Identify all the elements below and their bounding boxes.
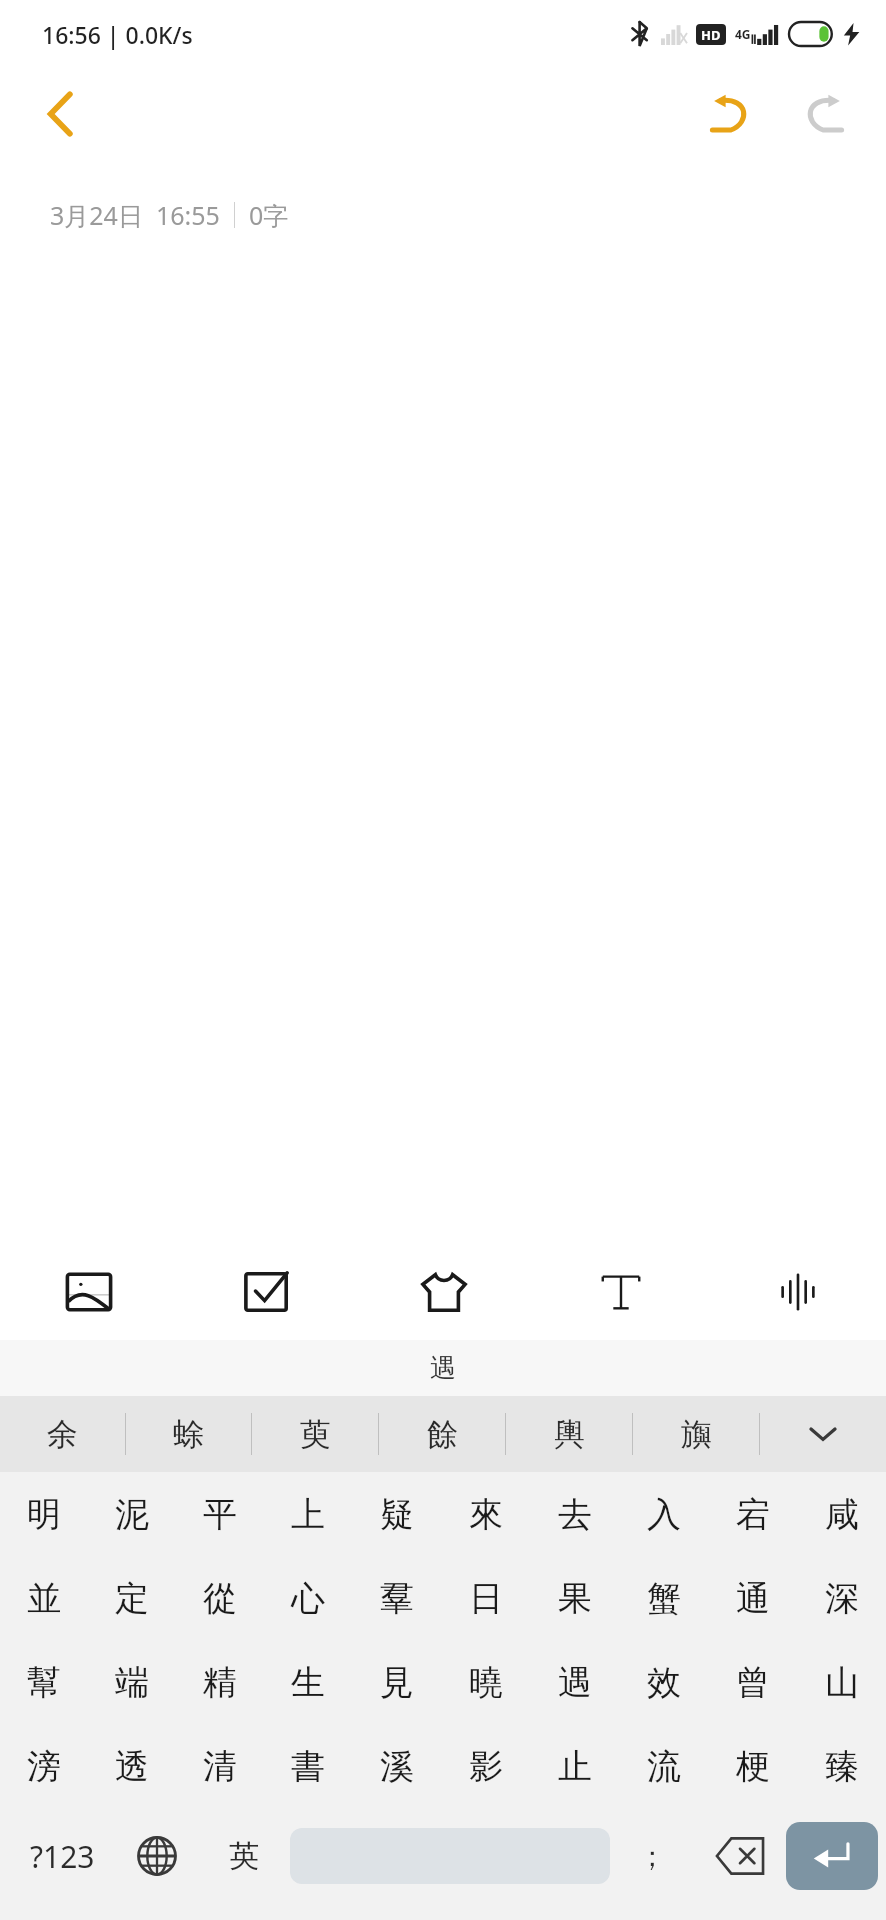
button[interactable]: 通 <box>708 1556 797 1640</box>
button[interactable]: 從 <box>176 1556 264 1640</box>
button[interactable]: 生 <box>264 1640 352 1724</box>
button[interactable]: 英 <box>198 1808 290 1904</box>
button[interactable]: 來 <box>441 1472 530 1556</box>
button[interactable]: 幫 <box>0 1640 88 1724</box>
button[interactable]: Insert image <box>0 1244 178 1340</box>
button[interactable]: 宕 <box>708 1472 797 1556</box>
staticText: 羣 <box>380 1577 414 1620</box>
button[interactable]: 曾 <box>708 1640 797 1724</box>
staticText: 余 <box>47 1415 78 1454</box>
staticText: 滂 <box>27 1745 61 1788</box>
staticText: ； <box>638 1839 666 1874</box>
staticText: 果 <box>558 1577 592 1620</box>
button[interactable]: 清 <box>176 1724 264 1808</box>
staticText: 日 <box>469 1577 503 1620</box>
button[interactable]: 精 <box>176 1640 264 1724</box>
button[interactable]: 滂 <box>0 1724 88 1808</box>
staticText: 宕 <box>736 1493 770 1536</box>
button[interactable]: 梗 <box>708 1724 797 1808</box>
button[interactable]: 定 <box>88 1556 176 1640</box>
button[interactable]: 咸 <box>797 1472 886 1556</box>
button[interactable]: 溪 <box>352 1724 441 1808</box>
staticText: 曾 <box>736 1661 770 1704</box>
staticText: 遇 <box>430 1352 456 1385</box>
button[interactable]: 端 <box>88 1640 176 1724</box>
staticText: 生 <box>291 1661 325 1704</box>
button[interactable]: 蜍 <box>126 1396 251 1472</box>
button[interactable]: 入 <box>619 1472 708 1556</box>
button[interactable]: Voice <box>709 1244 886 1340</box>
button[interactable]: Text format <box>532 1244 709 1340</box>
button[interactable]: 輿 <box>506 1396 632 1472</box>
staticText: 平 <box>203 1493 237 1536</box>
button[interactable]: 羣 <box>352 1556 441 1640</box>
staticText: 遇 <box>558 1661 592 1704</box>
button[interactable]: 書 <box>264 1724 352 1808</box>
button[interactable]: 萸 <box>252 1396 378 1472</box>
button[interactable]: 山 <box>797 1640 886 1724</box>
staticText: 來 <box>469 1493 503 1536</box>
button[interactable]: 見 <box>352 1640 441 1724</box>
staticText: 定 <box>115 1577 149 1620</box>
staticText: 端 <box>115 1661 149 1704</box>
button[interactable]: 心 <box>264 1556 352 1640</box>
button[interactable]: Backspace <box>694 1808 786 1904</box>
staticText: 餘 <box>427 1415 458 1454</box>
staticText: 去 <box>558 1493 592 1536</box>
button[interactable]: 上 <box>264 1472 352 1556</box>
staticText: 上 <box>291 1493 325 1536</box>
button[interactable]: 日 <box>441 1556 530 1640</box>
staticText: 旟 <box>681 1415 712 1454</box>
button[interactable]: 並 <box>0 1556 88 1640</box>
button[interactable]: 泥 <box>88 1472 176 1556</box>
staticText: 透 <box>115 1745 149 1788</box>
staticText: 從 <box>203 1577 237 1620</box>
button[interactable]: 止 <box>530 1724 619 1808</box>
button[interactable]: 明 <box>0 1472 88 1556</box>
staticText: 蟹 <box>647 1577 681 1620</box>
button[interactable]: 去 <box>530 1472 619 1556</box>
button[interactable]: 旟 <box>633 1396 759 1472</box>
staticText: 精 <box>203 1661 237 1704</box>
staticText: 入 <box>647 1493 681 1536</box>
button[interactable]: ?123 <box>8 1808 116 1904</box>
staticText: 英 <box>229 1837 259 1875</box>
staticText: 流 <box>647 1745 681 1788</box>
staticText: 曉 <box>469 1661 503 1704</box>
button[interactable]: 效 <box>619 1640 708 1724</box>
button[interactable]: Redo <box>784 74 864 154</box>
button[interactable]: 深 <box>797 1556 886 1640</box>
button[interactable]: 曉 <box>441 1640 530 1724</box>
button[interactable]: Checklist <box>178 1244 355 1340</box>
staticText: 清 <box>203 1745 237 1788</box>
staticText: 見 <box>380 1661 414 1704</box>
button[interactable]: 疑 <box>352 1472 441 1556</box>
button[interactable]: Enter <box>786 1822 878 1890</box>
button[interactable]: Undo <box>690 74 770 154</box>
button[interactable]: 余 <box>0 1396 125 1472</box>
button[interactable]: 透 <box>88 1724 176 1808</box>
staticText: 蜍 <box>173 1415 204 1454</box>
staticText: 並 <box>27 1577 61 1620</box>
button[interactable]: Expand candidates <box>760 1396 886 1472</box>
button[interactable]: Sticker <box>355 1244 532 1340</box>
button[interactable]: 平 <box>176 1472 264 1556</box>
button[interactable]: ； <box>610 1808 694 1904</box>
button[interactable]: Back <box>22 76 98 152</box>
staticText: 3月24日 16:55 <box>50 198 220 232</box>
button[interactable]: 遇 <box>530 1640 619 1724</box>
button[interactable]: Switch language <box>116 1808 198 1904</box>
staticText: HD <box>701 26 721 44</box>
staticText: 山 <box>825 1661 859 1704</box>
staticText: 4G <box>735 26 751 42</box>
button[interactable]: 果 <box>530 1556 619 1640</box>
button[interactable]: 餘 <box>379 1396 505 1472</box>
staticText: 泥 <box>115 1493 149 1536</box>
staticText: 通 <box>736 1577 770 1620</box>
staticText: 萸 <box>300 1415 331 1454</box>
button[interactable]: 臻 <box>797 1724 886 1808</box>
button[interactable]: 流 <box>619 1724 708 1808</box>
button[interactable]: 蟹 <box>619 1556 708 1640</box>
button[interactable]: 影 <box>441 1724 530 1808</box>
